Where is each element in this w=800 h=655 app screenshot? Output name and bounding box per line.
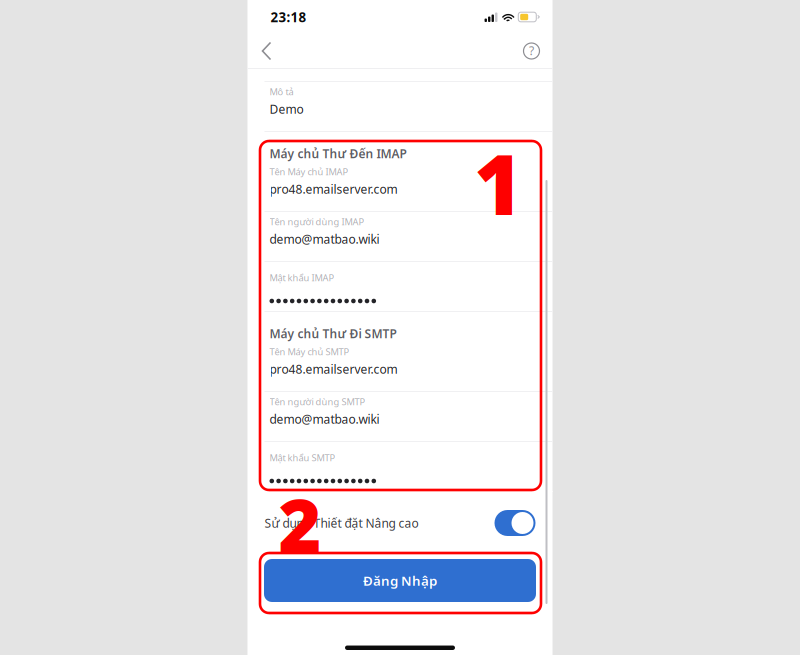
staticText: Sử dụng Thiết đặt Nâng cao [264, 515, 418, 531]
staticText: Tên Máy chủ IMAP [269, 165, 348, 178]
staticText: demo@matbao.wiki [269, 411, 379, 427]
staticText: Tên Máy chủ SMTP [269, 345, 349, 358]
staticText: demo@matbao.wiki [269, 231, 379, 247]
button[interactable]: Sử dụng Thiết đặt Nâng cao [247, 492, 552, 554]
staticText: 1 [474, 128, 522, 238]
staticText: Máy chủ Thư Đến IMAP [269, 146, 406, 161]
button[interactable]: Help [516, 34, 546, 68]
staticText: Tên người dùng SMTP [269, 395, 365, 408]
staticText: Tên người dùng IMAP [269, 215, 364, 228]
button[interactable]: Back [247, 34, 285, 68]
staticText: Máy chủ Thư Đi SMTP [269, 326, 396, 341]
staticText: 23:18 [270, 8, 306, 26]
staticText: Mật khẩu IMAP [269, 271, 334, 284]
staticText: 2 [278, 475, 321, 572]
staticText: Mật khẩu SMTP [269, 451, 335, 464]
staticText: ? [529, 42, 534, 58]
staticText: pro48.emailserver.com [269, 181, 397, 197]
staticText: pro48.emailserver.com [269, 361, 397, 377]
staticText: Đăng Nhập [363, 572, 437, 589]
staticText: Mô tả [269, 85, 293, 98]
staticText: Demo [269, 101, 303, 117]
button[interactable]: Đăng Nhập [264, 559, 536, 602]
